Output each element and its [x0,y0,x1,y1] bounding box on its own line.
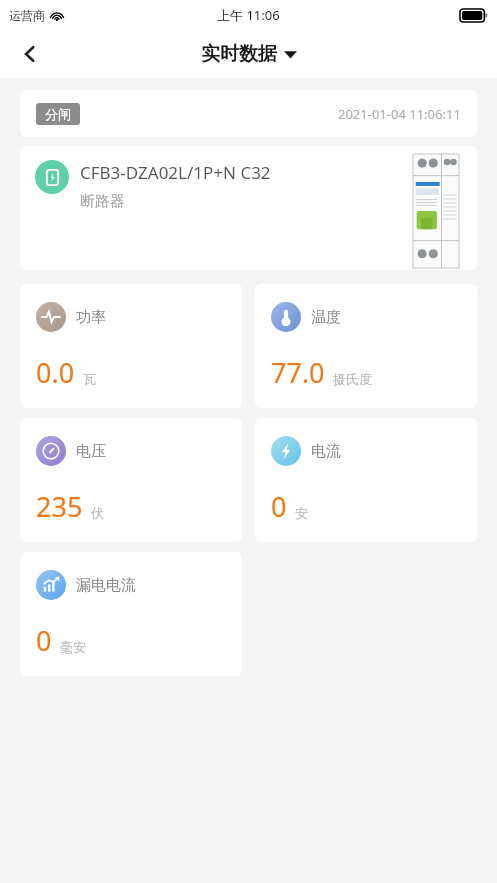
staticText: 235 [36,488,83,525]
button[interactable]: CFB3-DZA02L/1P+N C32 [20,146,477,270]
button[interactable]: 温度 [255,284,477,408]
staticText: 漏电电流 [76,576,136,595]
staticText: 77.0 [271,354,325,391]
staticText: 毫安 [60,639,86,655]
staticText: 伏 [91,505,104,521]
button[interactable]: 漏电电流 [20,552,242,676]
staticText: 温度 [311,308,341,327]
staticText: 摄氏度 [333,371,372,387]
button[interactable]: 实时数据 [201,42,297,66]
button[interactable]: 分闸 [20,90,477,137]
staticText: 上午 11:06 [217,6,280,24]
button[interactable]: 电流 [255,418,477,542]
staticText: 0 [271,488,287,525]
staticText: 电流 [311,442,341,461]
button[interactable]: 功率 [20,284,242,408]
staticText: 瓦 [83,371,96,387]
button[interactable]: Back [8,32,52,76]
staticText: 运营商 [9,8,45,23]
staticText: 分闸 [45,106,71,122]
staticText: 断路器 [80,192,125,211]
staticText: 0.0 [36,354,75,391]
staticText: 安 [295,505,308,521]
button[interactable]: 电压 [20,418,242,542]
staticText: 实时数据 [201,42,277,66]
staticText: 2021-01-04 11:06:11 [338,105,461,123]
staticText: CFB3-DZA02L/1P+N C32 [80,161,271,184]
staticText: 功率 [76,308,106,327]
staticText: 0 [36,622,52,659]
staticText: 电压 [76,442,106,461]
